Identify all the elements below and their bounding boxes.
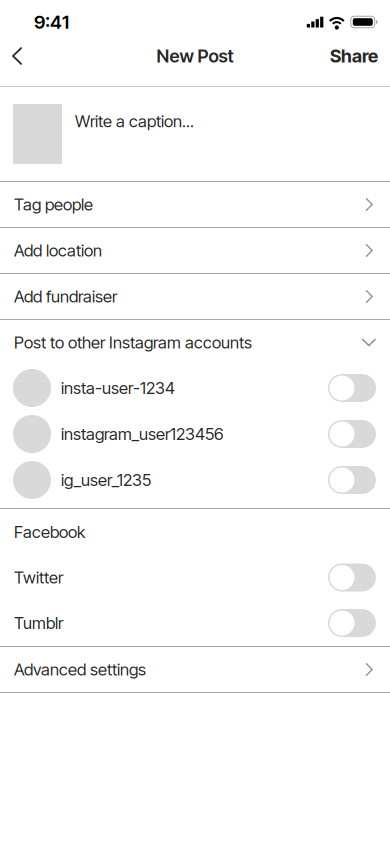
button[interactable]: ig_user_1235 bbox=[0, 457, 390, 503]
button[interactable]: Tag people bbox=[0, 182, 390, 227]
button[interactable]: Write a caption... bbox=[0, 87, 390, 181]
staticText: Tumblr bbox=[14, 613, 63, 633]
staticText: New Post bbox=[156, 45, 233, 67]
button[interactable]: Share bbox=[316, 44, 390, 68]
staticText: Share bbox=[330, 45, 378, 67]
staticText: Add location bbox=[14, 240, 102, 261]
button[interactable]: Advanced settings bbox=[0, 647, 390, 692]
staticText: Advanced settings bbox=[14, 659, 146, 680]
button[interactable]: Post to other Instagram accounts bbox=[0, 320, 390, 365]
staticText: Twitter bbox=[14, 567, 63, 588]
staticText: Write a caption... bbox=[75, 111, 194, 131]
button[interactable]: Add fundraiser bbox=[0, 274, 390, 319]
button[interactable]: Back bbox=[0, 44, 36, 68]
staticText: Facebook bbox=[14, 522, 85, 542]
staticText: ig_user_1235 bbox=[61, 470, 151, 490]
button[interactable]: Add location bbox=[0, 228, 390, 273]
staticText: Add fundraiser bbox=[14, 286, 117, 307]
staticText: instagram_user123456 bbox=[61, 424, 223, 444]
button[interactable]: Facebook bbox=[0, 509, 390, 555]
button[interactable]: instagram_user123456 bbox=[0, 411, 390, 457]
button[interactable]: Twitter bbox=[0, 555, 390, 600]
button[interactable]: Tumblr bbox=[0, 600, 390, 646]
staticText: Tag people bbox=[14, 194, 93, 215]
staticText: insta-user-1234 bbox=[61, 378, 175, 398]
button[interactable]: insta-user-1234 bbox=[0, 365, 390, 411]
staticText: Post to other Instagram accounts bbox=[14, 332, 252, 353]
staticText: 9:41 bbox=[34, 11, 69, 33]
